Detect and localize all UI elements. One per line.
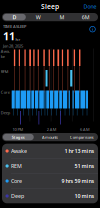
staticText: Awake [11,147,27,154]
button[interactable]: W [27,14,50,20]
button[interactable]: M [50,14,73,20]
staticText: W [36,14,41,21]
staticText: i [92,26,93,32]
button[interactable]: Amounts [35,134,65,140]
staticText: M [59,14,64,21]
staticText: Jan 28, 2025 [3,43,23,48]
staticText: Sleep [41,2,59,11]
staticText: 51 mins [74,162,94,169]
button[interactable]: Stages [3,134,34,140]
staticText: Comparisons [70,134,94,140]
staticText: REM [1,69,9,74]
staticText: REM [11,162,22,169]
staticText: 6 AM [80,127,90,132]
staticText: D [12,14,16,21]
staticText: 1 hr 13 mins [64,147,94,154]
staticText: 10 mins [74,192,94,199]
button[interactable]: REM [2,159,98,173]
staticText: 6M [82,14,90,21]
button[interactable]: 6M [74,14,97,20]
staticText: 11 [3,29,15,43]
button[interactable]: Done [80,1,100,12]
staticText: 10 PM [12,127,23,132]
button[interactable]: Awake [2,144,98,158]
staticText: Done [83,3,96,10]
staticText: Core [1,89,10,95]
button[interactable]: D [3,14,26,20]
staticText: Awake [1,48,10,59]
staticText: Deep [1,110,10,115]
button[interactable]: Core [2,174,98,188]
staticText: Stages [12,134,25,140]
button[interactable]: About sleep data [88,21,97,37]
staticText: 9 hrs 59 mins [61,177,94,184]
staticText: Amounts [42,134,58,140]
staticText: hr [16,37,21,42]
staticText: Core [11,177,22,184]
staticText: 2 AM [47,127,57,132]
button[interactable]: Deep [2,189,98,203]
staticText: Deep [11,192,24,199]
button[interactable]: Comparisons [66,134,97,140]
staticText: TIME ASLEEP [3,24,26,29]
